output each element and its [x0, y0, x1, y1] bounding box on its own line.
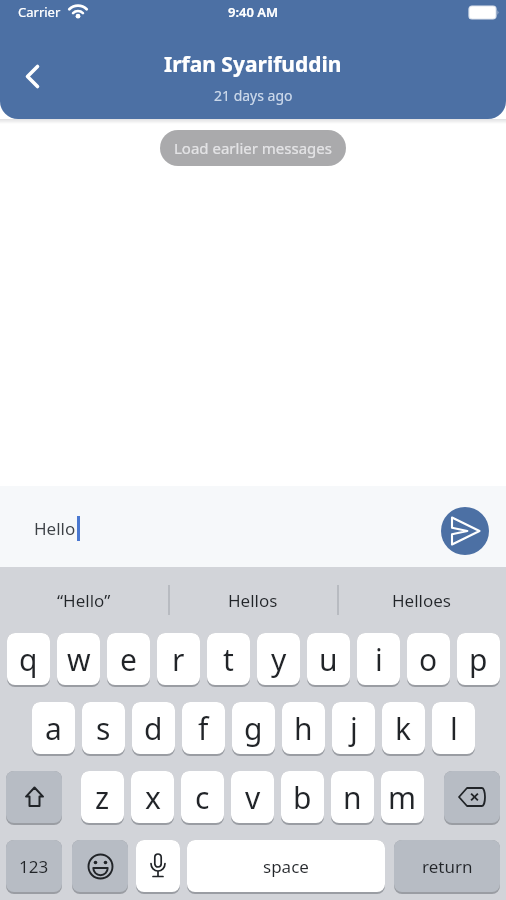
staticText: n	[343, 777, 362, 818]
staticText: 21 days ago	[214, 86, 293, 105]
staticText: z	[95, 777, 110, 818]
staticText: x	[145, 777, 161, 818]
button[interactable]: q	[7, 633, 50, 685]
button[interactable]: v	[231, 771, 274, 823]
staticText: “Hello”	[57, 589, 111, 612]
button[interactable]: r	[157, 633, 200, 685]
staticText: o	[419, 639, 438, 680]
staticText: Hello	[34, 517, 76, 540]
button[interactable]: Hellos	[168, 567, 337, 633]
button[interactable]: space	[187, 840, 385, 892]
button[interactable]: t	[207, 633, 250, 685]
button[interactable]: s	[82, 702, 125, 754]
staticText: v	[245, 777, 261, 818]
staticText: Irfan Syarifuddin	[164, 50, 342, 79]
staticText: p	[469, 639, 488, 680]
button[interactable]: return	[394, 840, 500, 892]
button[interactable]: e	[107, 633, 150, 685]
button[interactable]	[136, 840, 180, 892]
staticText: i	[375, 639, 383, 680]
staticText: b	[293, 777, 312, 818]
staticText: s	[96, 708, 111, 749]
button[interactable]: p	[457, 633, 500, 685]
staticText: Hellos	[228, 589, 278, 612]
button[interactable]: w	[57, 633, 100, 685]
button[interactable]	[441, 507, 489, 555]
button[interactable]: j	[332, 702, 375, 754]
staticText: k	[395, 708, 412, 749]
staticText: t	[223, 639, 234, 680]
button[interactable]: u	[307, 633, 350, 685]
staticText: u	[319, 639, 338, 680]
button[interactable]: n	[331, 771, 374, 823]
staticText: return	[422, 855, 473, 878]
staticText: c	[195, 777, 210, 818]
button[interactable]: Helloes	[337, 567, 506, 633]
staticText: space	[263, 855, 309, 878]
staticText: 123	[19, 855, 49, 878]
button[interactable]: z	[81, 771, 124, 823]
staticText: j	[350, 708, 358, 749]
staticText: l	[450, 708, 458, 749]
button[interactable]: d	[132, 702, 175, 754]
button[interactable]: a	[32, 702, 75, 754]
staticText: Load earlier messages	[174, 138, 332, 158]
staticText: q	[19, 639, 38, 680]
staticText: d	[144, 708, 163, 749]
staticText: g	[244, 708, 263, 749]
button[interactable]: k	[382, 702, 425, 754]
button[interactable]: g	[232, 702, 275, 754]
staticText: m	[388, 777, 417, 818]
button[interactable]: i	[357, 633, 400, 685]
button[interactable]	[444, 771, 500, 823]
staticText: Helloes	[392, 589, 451, 612]
staticText: e	[120, 639, 137, 680]
button[interactable]: y	[257, 633, 300, 685]
staticText: f	[198, 708, 209, 749]
button[interactable]: x	[131, 771, 174, 823]
staticText: Carrier	[18, 3, 61, 21]
staticText: h	[294, 708, 313, 749]
staticText: y	[271, 639, 287, 680]
button[interactable]: 123	[6, 840, 62, 892]
staticText: w	[67, 639, 91, 680]
button[interactable]: l	[432, 702, 475, 754]
staticText: a	[45, 708, 62, 749]
button[interactable]	[12, 56, 52, 96]
button[interactable]: “Hello”	[0, 567, 168, 633]
button[interactable]: o	[407, 633, 450, 685]
button[interactable]: m	[381, 771, 424, 823]
button[interactable]: b	[281, 771, 324, 823]
button[interactable]: f	[182, 702, 225, 754]
button[interactable]: h	[282, 702, 325, 754]
staticText: r	[172, 639, 185, 680]
button[interactable]: Load earlier messages	[160, 130, 346, 166]
staticText: 9:40 AM	[228, 3, 279, 21]
button[interactable]: c	[181, 771, 224, 823]
button[interactable]	[72, 840, 128, 892]
button[interactable]	[6, 771, 62, 823]
